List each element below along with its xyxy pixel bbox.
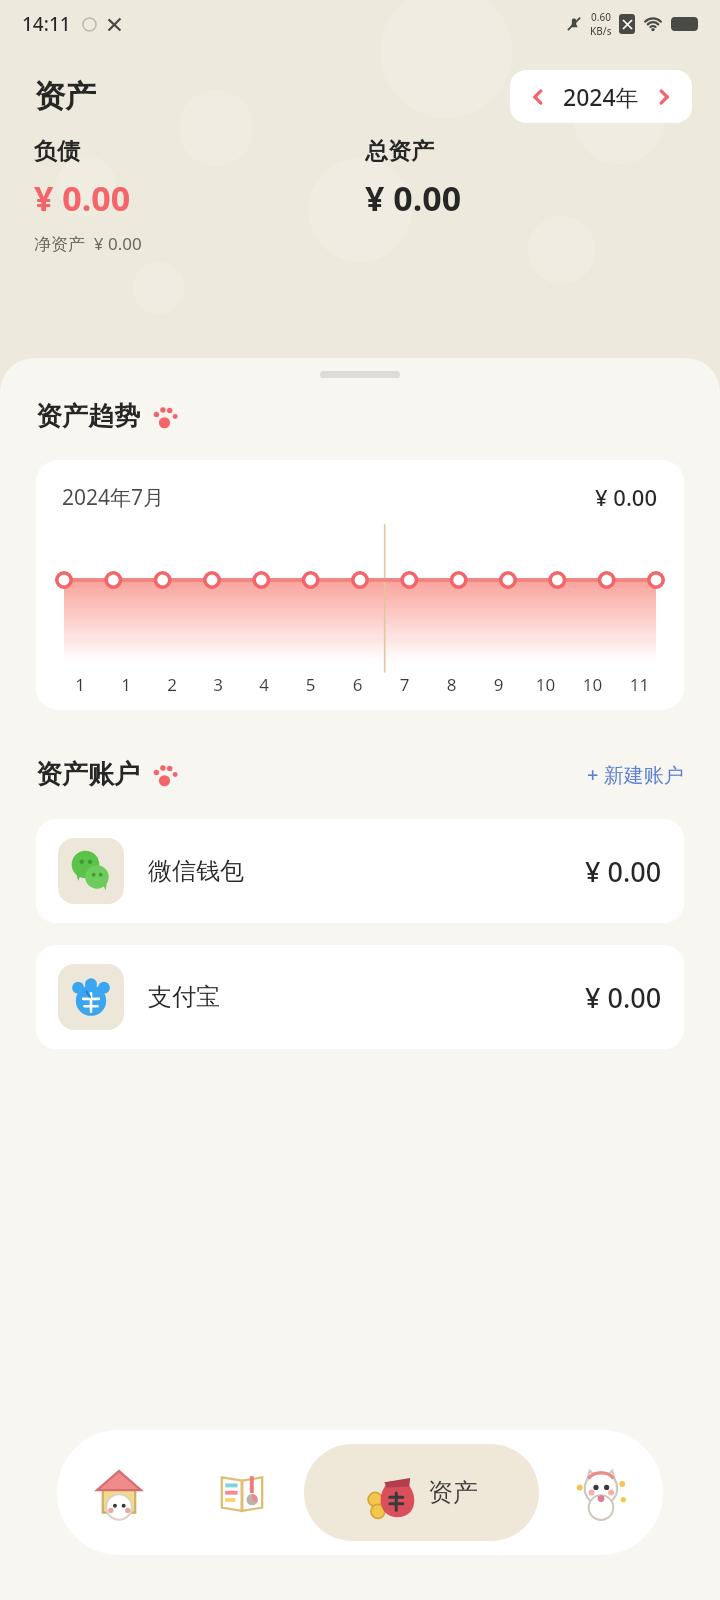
staticText: 10 [569, 673, 616, 696]
staticText: 6 [334, 673, 381, 696]
staticText: 10 [522, 673, 569, 696]
staticText: 2024年 [563, 81, 639, 112]
staticText: 3 [195, 673, 241, 696]
staticText: 2 [149, 673, 195, 696]
staticText: 净资产 ¥ 0.00 [34, 232, 142, 255]
staticText: 资产 [34, 77, 96, 116]
staticText: ¥ 0.00 [585, 979, 662, 1016]
other: 下一年 [656, 89, 672, 105]
button[interactable]: 我的 [539, 1430, 663, 1555]
staticText: 支付宝 [148, 982, 220, 1012]
staticText: 0.60 [591, 10, 611, 24]
staticText: 负债 [34, 137, 80, 166]
staticText: ¥ 0.00 [595, 482, 658, 512]
button[interactable]: 支付宝 [36, 945, 684, 1049]
staticText: 1 [57, 673, 103, 696]
button[interactable]: 上一年 [510, 70, 692, 123]
staticText: + 新建账户 [587, 761, 684, 788]
button[interactable]: 首页 [57, 1430, 180, 1555]
button[interactable]: 资产 [304, 1444, 539, 1541]
staticText: 1 [103, 673, 149, 696]
staticText: 8 [428, 673, 475, 696]
staticText: ¥ 0.00 [585, 853, 662, 890]
staticText: ¥ 0.00 [365, 175, 462, 221]
staticText: 资产账户 [36, 758, 140, 791]
staticText: 5 [287, 673, 334, 696]
staticText: 14:11 [22, 11, 71, 37]
staticText: 2024年7月 [62, 483, 165, 512]
staticText: 资产趋势 [36, 400, 140, 433]
button[interactable]: + 新建账户 [581, 757, 690, 792]
staticText: 微信钱包 [148, 856, 244, 886]
button[interactable]: 微信钱包 [36, 819, 684, 923]
staticText: 7 [381, 673, 428, 696]
other: 上一年 [530, 89, 546, 105]
staticText: 4 [241, 673, 287, 696]
staticText: KB/s [590, 24, 612, 38]
button[interactable]: 2024年7月 [36, 460, 684, 710]
button[interactable]: 账本 [180, 1430, 304, 1555]
staticText: ¥ 0.00 [34, 175, 131, 221]
staticText: 11 [616, 673, 663, 696]
staticText: 资产 [428, 1477, 478, 1508]
staticText: 总资产 [365, 137, 434, 166]
staticText: 9 [475, 673, 522, 696]
